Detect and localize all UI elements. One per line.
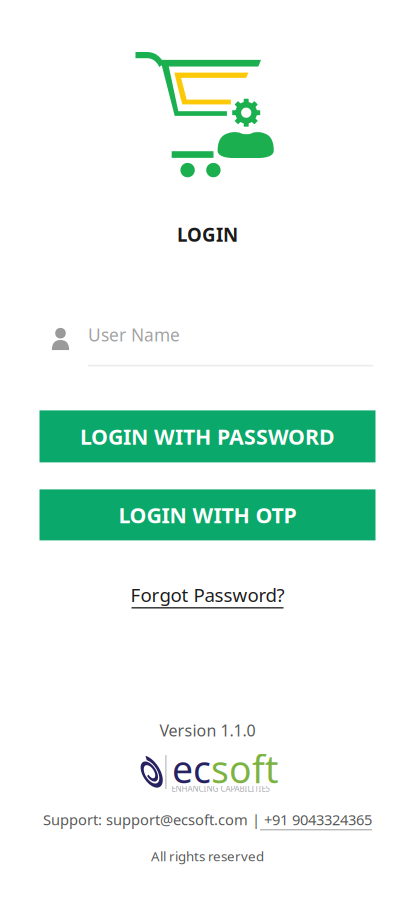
button[interactable]: Forgot Password? <box>122 582 292 608</box>
staticText: Forgot Password? <box>130 582 284 607</box>
staticText: soft <box>211 744 278 794</box>
staticText: User Name <box>88 323 180 346</box>
staticText: LOGIN WITH PASSWORD <box>80 422 335 450</box>
button[interactable]: LOGIN WITH OTP <box>39 489 375 540</box>
staticText: Support: support@ecsoft.com | +91 904332… <box>43 810 372 829</box>
staticText: ec <box>172 744 211 794</box>
button[interactable]: LOGIN WITH PASSWORD <box>39 410 375 462</box>
staticText: LOGIN <box>177 222 238 247</box>
staticText: All rights reserved <box>151 847 264 865</box>
staticText: LOGIN WITH OTP <box>118 501 296 529</box>
staticText: ENHANCING CAPABILITIES <box>171 783 269 794</box>
staticText: Version 1.1.0 <box>159 720 255 741</box>
